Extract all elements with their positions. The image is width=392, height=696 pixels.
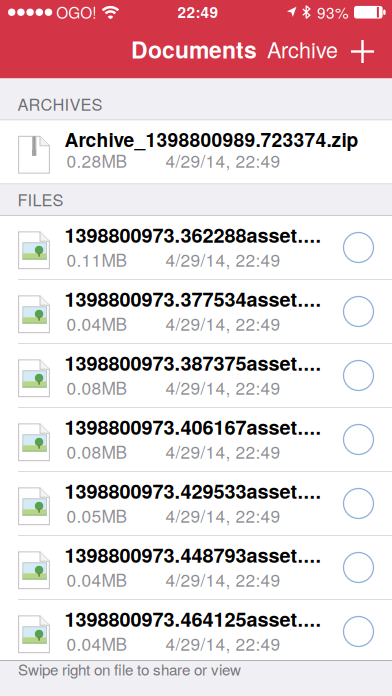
button[interactable]: Archive_1398800989.723374.zip bbox=[0, 120, 392, 183]
staticText: 4/29/14, 22:49 bbox=[165, 148, 280, 173]
button[interactable]: Select file bbox=[343, 232, 373, 262]
staticText: 93% bbox=[317, 1, 349, 23]
button[interactable]: 1398800973.387375asset.... bbox=[0, 344, 392, 407]
staticText: 1398800973.387375asset.... bbox=[64, 348, 321, 377]
staticText: 0.04MB bbox=[66, 311, 127, 336]
button[interactable]: Archive bbox=[267, 36, 338, 67]
staticText: OGO! bbox=[56, 1, 96, 23]
staticText: 0.08MB bbox=[66, 375, 127, 400]
staticText: Swipe right on file to share or view bbox=[18, 658, 241, 680]
staticText: 4/29/14, 22:49 bbox=[165, 311, 280, 336]
staticText: 1398800973.429533asset.... bbox=[64, 476, 321, 505]
staticText: 0.04MB bbox=[66, 567, 127, 592]
button[interactable]: 1398800973.406167asset.... bbox=[0, 408, 392, 471]
staticText: FILES bbox=[17, 187, 63, 211]
staticText: Archive_1398800989.723374.zip bbox=[64, 125, 358, 153]
staticText: Archive bbox=[267, 33, 338, 64]
button[interactable]: 1398800973.429533asset.... bbox=[0, 472, 392, 535]
button[interactable]: Select file bbox=[343, 552, 373, 582]
staticText: 0.05MB bbox=[66, 503, 127, 528]
staticText: 0.08MB bbox=[66, 439, 127, 464]
button[interactable]: Add bbox=[338, 40, 374, 63]
staticText: 4/29/14, 22:49 bbox=[165, 439, 280, 464]
staticText: 4/29/14, 22:49 bbox=[165, 503, 280, 528]
button[interactable]: Select file bbox=[343, 488, 373, 518]
staticText: 22:49 bbox=[177, 1, 218, 23]
staticText: 4/29/14, 22:49 bbox=[165, 631, 280, 656]
button[interactable]: Select file bbox=[343, 296, 373, 326]
button[interactable]: 1398800973.448793asset.... bbox=[0, 536, 392, 599]
staticText: 0.28MB bbox=[66, 148, 127, 173]
staticText: 4/29/14, 22:49 bbox=[165, 247, 280, 272]
staticText: 0.04MB bbox=[66, 631, 127, 656]
staticText: 1398800973.448793asset.... bbox=[64, 540, 321, 569]
button[interactable]: Select file bbox=[343, 424, 373, 454]
staticText: 1398800973.377534asset.... bbox=[64, 284, 321, 313]
staticText: 4/29/14, 22:49 bbox=[165, 567, 280, 592]
staticText: 1398800973.362288asset.... bbox=[64, 220, 321, 249]
button[interactable]: 1398800973.377534asset.... bbox=[0, 280, 392, 343]
button[interactable]: 1398800973.362288asset.... bbox=[0, 216, 392, 279]
staticText: 4/29/14, 22:49 bbox=[165, 375, 280, 400]
button[interactable]: 1398800973.464125asset.... bbox=[0, 600, 392, 663]
staticText: Documents bbox=[131, 33, 257, 65]
staticText: 0.11MB bbox=[66, 247, 127, 272]
staticText: 1398800973.406167asset.... bbox=[64, 412, 321, 441]
button[interactable]: Select file bbox=[343, 616, 373, 646]
staticText: 1398800973.464125asset.... bbox=[64, 604, 321, 633]
button[interactable]: Select file bbox=[343, 360, 373, 390]
staticText: ARCHIVES bbox=[17, 92, 102, 115]
